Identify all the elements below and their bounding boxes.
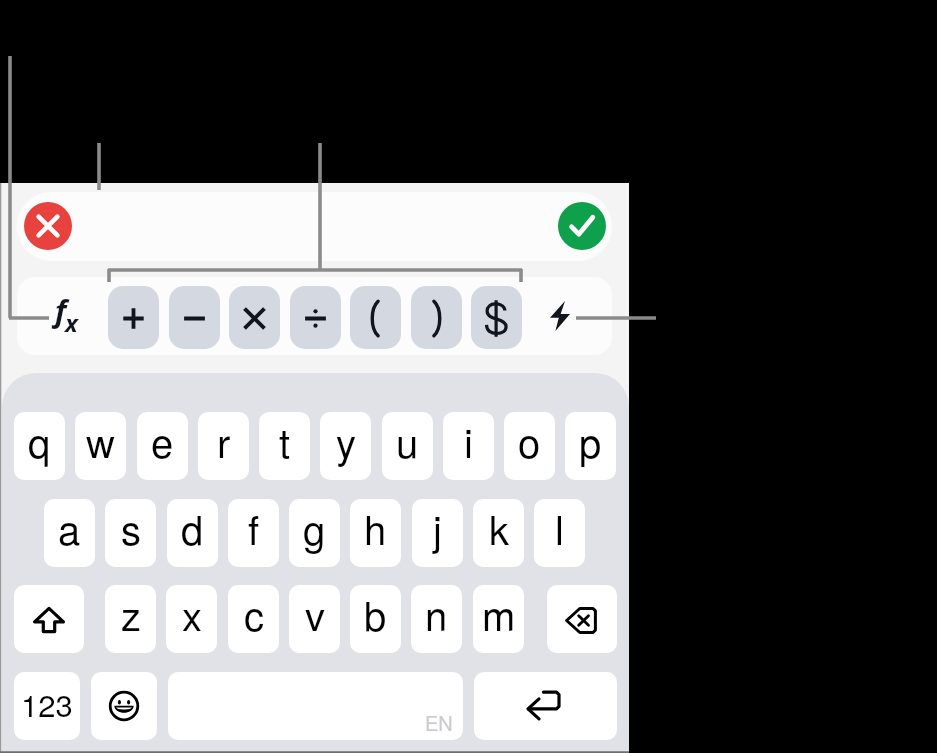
staticText: s	[121, 499, 141, 556]
staticText: z	[121, 585, 141, 642]
button[interactable]: t	[259, 412, 310, 480]
staticText: g	[303, 499, 326, 556]
staticText: j	[433, 499, 442, 556]
button[interactable]: Space	[168, 672, 463, 740]
button[interactable]: x	[166, 585, 217, 653]
button[interactable]: g	[289, 499, 340, 567]
staticText: a	[58, 499, 81, 556]
button[interactable]: Close parenthesis	[411, 286, 462, 349]
staticText: m	[482, 585, 516, 642]
staticText: p	[579, 412, 602, 469]
button[interactable]: Backspace	[547, 585, 617, 653]
staticText: w	[86, 412, 115, 469]
button[interactable]: p	[565, 412, 616, 480]
button[interactable]: Open parenthesis	[350, 286, 401, 349]
button[interactable]: Plus	[108, 286, 159, 349]
button[interactable]: Cancel	[24, 202, 72, 250]
button[interactable]: f	[228, 499, 279, 567]
button[interactable]: Quick formula	[535, 291, 585, 341]
staticText: 123	[21, 681, 73, 725]
staticText: f	[248, 499, 260, 556]
button[interactable]: l	[534, 499, 585, 567]
staticText: t	[279, 412, 291, 469]
button[interactable]: w	[75, 412, 126, 480]
staticText: i	[464, 412, 473, 469]
button[interactable]: u	[382, 412, 433, 480]
button[interactable]: k	[473, 499, 524, 567]
button[interactable]: v	[289, 585, 340, 653]
staticText: c	[244, 585, 264, 642]
button[interactable]: j	[412, 499, 463, 567]
button[interactable]: d	[167, 499, 218, 567]
staticText: r	[217, 412, 231, 469]
button[interactable]: r	[198, 412, 249, 480]
button[interactable]: Emoji keyboard	[91, 672, 157, 740]
button[interactable]: Dollar sign	[471, 286, 522, 349]
staticText: b	[364, 585, 387, 642]
button[interactable]: Return	[474, 672, 617, 740]
button[interactable]: Shift	[14, 585, 84, 653]
button[interactable]: s	[105, 499, 156, 567]
button[interactable]: Minus	[169, 286, 220, 349]
button[interactable]: o	[504, 412, 555, 480]
button[interactable]: m	[473, 585, 524, 653]
button[interactable]: e	[137, 412, 188, 480]
button[interactable]: Divide	[290, 286, 341, 349]
button[interactable]: q	[14, 412, 65, 480]
staticText: l	[555, 499, 564, 556]
button[interactable]: Multiply	[229, 286, 280, 349]
button[interactable]: h	[350, 499, 401, 567]
staticText: f	[55, 290, 67, 331]
button[interactable]: z	[105, 585, 156, 653]
button[interactable]: Accept	[558, 202, 606, 250]
button[interactable]: b	[350, 585, 401, 653]
button[interactable]: i	[443, 412, 494, 480]
button[interactable]: Numbers	[14, 672, 80, 740]
staticText: EN	[425, 708, 453, 737]
staticText: x	[65, 306, 78, 339]
button[interactable]: c	[228, 585, 279, 653]
button[interactable]: Functions	[47, 289, 101, 343]
button[interactable]: n	[411, 585, 462, 653]
staticText: x	[182, 585, 202, 642]
staticText: e	[151, 412, 174, 469]
staticText: o	[518, 412, 541, 469]
staticText: k	[489, 499, 509, 556]
button[interactable]: y	[320, 412, 371, 480]
staticText: u	[396, 412, 419, 469]
staticText: q	[28, 412, 51, 469]
staticText: d	[181, 499, 204, 556]
staticText: n	[425, 585, 448, 642]
staticText: y	[336, 412, 356, 469]
staticText: h	[364, 499, 387, 556]
staticText: v	[305, 585, 325, 642]
button[interactable]: a	[44, 499, 95, 567]
